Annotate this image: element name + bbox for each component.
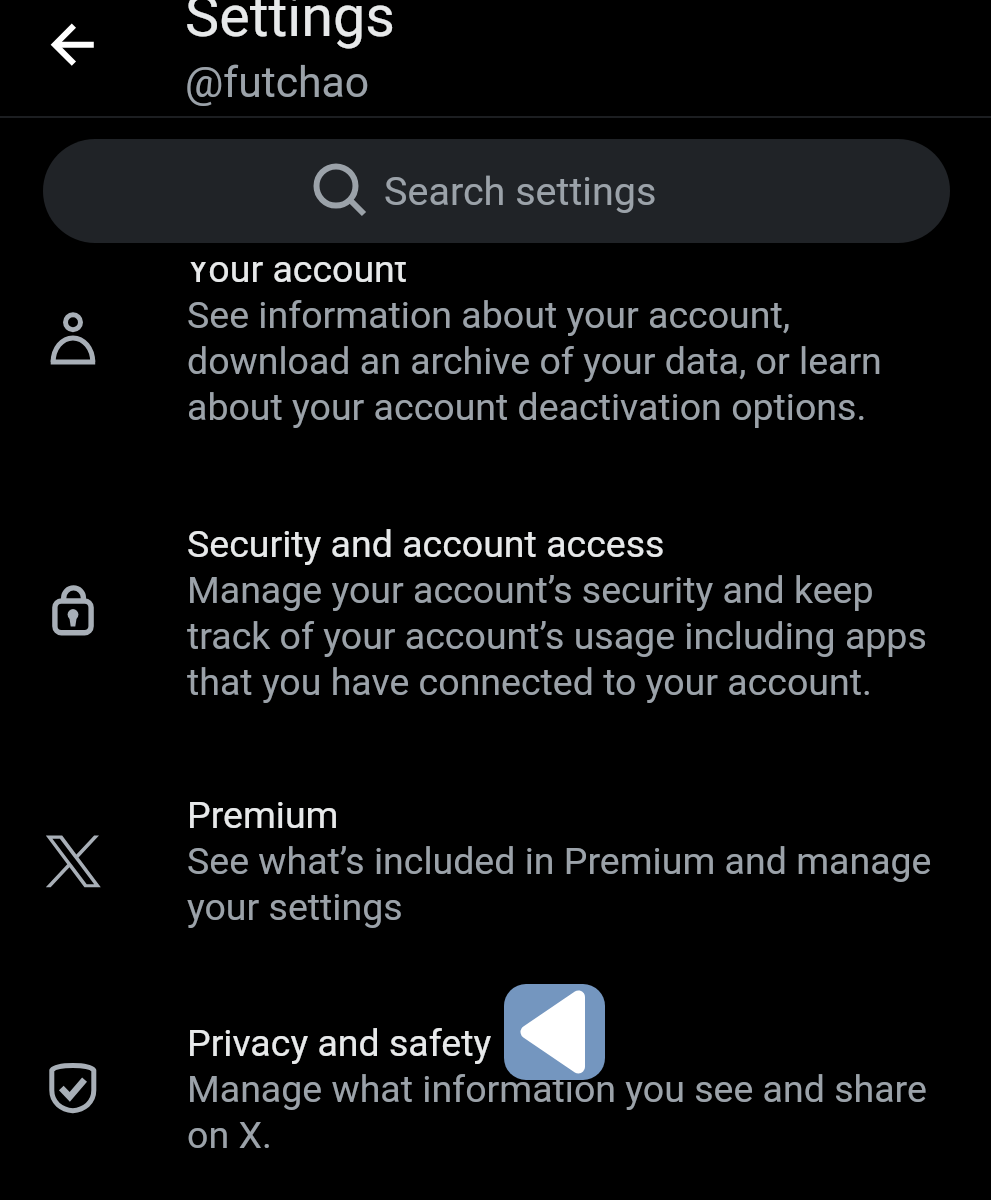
staticText: @futchao: [185, 56, 370, 108]
button[interactable]: Security and account access: [0, 520, 991, 704]
staticText: Search settings: [384, 167, 657, 215]
button[interactable]: Premium: [0, 791, 991, 929]
staticText: Privacy and safety: [187, 1019, 492, 1065]
button[interactable]: Privacy and safety: [0, 1019, 991, 1157]
staticText: See what’s included in Premium and manag…: [187, 837, 943, 929]
staticText: Security and account access: [187, 520, 665, 566]
staticText: Manage your account’s security and keep …: [187, 566, 943, 704]
staticText: Manage what information you see and shar…: [187, 1065, 943, 1157]
button[interactable]: Your account: [0, 262, 991, 429]
staticText: See information about your account, down…: [187, 291, 943, 429]
staticText: Settings: [185, 0, 395, 48]
button[interactable]: Back: [504, 984, 605, 1080]
staticText: Your account: [187, 262, 408, 291]
button[interactable]: Back: [25, 10, 121, 80]
staticText: Premium: [187, 791, 339, 837]
button[interactable]: Search settings: [43, 139, 950, 243]
